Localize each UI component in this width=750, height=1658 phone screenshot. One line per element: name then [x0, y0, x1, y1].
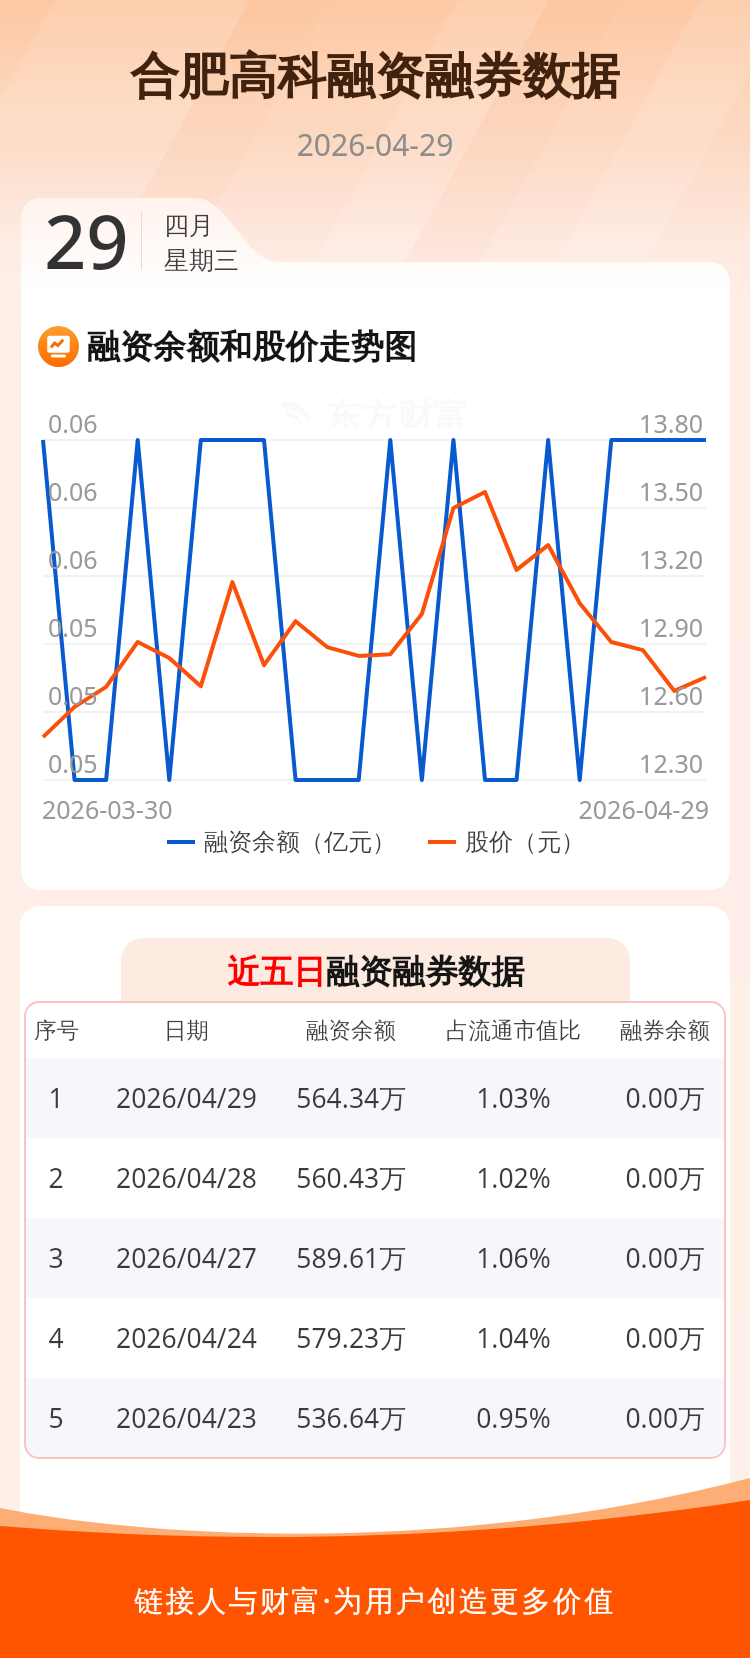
staticText: 589.61万	[296, 1240, 406, 1276]
staticText: 4	[48, 1320, 64, 1356]
staticText: 融资余额（亿元）	[204, 827, 396, 857]
staticText: 1.06%	[476, 1240, 551, 1276]
staticText: 3	[48, 1240, 64, 1276]
staticText: 0.00万	[625, 1400, 705, 1436]
staticText: 13.20	[503, 542, 703, 576]
staticText: 0.05	[48, 610, 98, 644]
staticText: 日期	[164, 1016, 209, 1044]
staticText: 股价（元）	[465, 827, 585, 857]
staticText: 0.00万	[625, 1080, 705, 1116]
staticText: 四月	[164, 210, 214, 241]
staticText: 2026/04/29	[116, 1080, 257, 1116]
staticText: 12.90	[503, 610, 703, 644]
staticText: 星期三	[164, 245, 239, 276]
staticText: 融券余额	[620, 1016, 710, 1044]
button[interactable]: 5	[25, 1378, 725, 1458]
staticText: 链接人与财富·为用户创造更多价值	[0, 1580, 750, 1620]
staticText: 2	[48, 1160, 64, 1196]
staticText: 2026-04-29	[0, 124, 750, 165]
button[interactable]: 序号	[25, 1002, 725, 1058]
staticText: 12.30	[503, 746, 703, 780]
staticText: 0.00万	[625, 1320, 705, 1356]
staticText: 1	[48, 1080, 64, 1116]
staticText: 12.60	[503, 678, 703, 712]
staticText: 2026/04/23	[116, 1400, 257, 1436]
staticText: 579.23万	[296, 1320, 406, 1356]
staticText: 2026/04/24	[116, 1320, 257, 1356]
staticText: 1.04%	[476, 1320, 551, 1356]
staticText: 13.50	[503, 474, 703, 508]
staticText: 0.95%	[476, 1400, 551, 1436]
other: 走势图	[38, 326, 79, 367]
staticText: 2026/04/27	[116, 1240, 257, 1276]
staticText: 融资余额和股价走势图	[87, 326, 417, 367]
staticText: 0.00万	[625, 1160, 705, 1196]
staticText: 0.00万	[625, 1240, 705, 1276]
staticText: 2026/04/28	[116, 1160, 257, 1196]
staticText: 564.34万	[296, 1080, 406, 1116]
staticText: 序号	[34, 1016, 79, 1044]
staticText: 融资余额	[306, 1016, 396, 1044]
staticText: 5	[48, 1400, 64, 1436]
button[interactable]: 3	[25, 1218, 725, 1298]
staticText: 近五日	[227, 951, 326, 993]
staticText: 0.06	[48, 474, 98, 508]
staticText: 占流通市值比	[446, 1016, 581, 1044]
staticText: 536.64万	[296, 1400, 406, 1436]
staticText: 2026-03-30	[42, 792, 173, 826]
staticText: 0.06	[48, 406, 98, 440]
staticText: 0.05	[48, 678, 98, 712]
staticText: 560.43万	[296, 1160, 406, 1196]
button[interactable]: 2	[25, 1138, 725, 1218]
staticText: 2026-04-29	[509, 792, 709, 826]
staticText: 0.06	[48, 542, 98, 576]
staticText: 融资融券数据	[326, 951, 524, 993]
staticText: 合肥高科融资融券数据	[0, 46, 750, 108]
staticText: 13.80	[503, 406, 703, 440]
button[interactable]: 1	[25, 1058, 725, 1138]
staticText: 1.02%	[476, 1160, 551, 1196]
staticText: 0.05	[48, 746, 98, 780]
button[interactable]: 4	[25, 1298, 725, 1378]
staticText: 1.03%	[476, 1080, 551, 1116]
staticText: 29	[44, 190, 129, 291]
